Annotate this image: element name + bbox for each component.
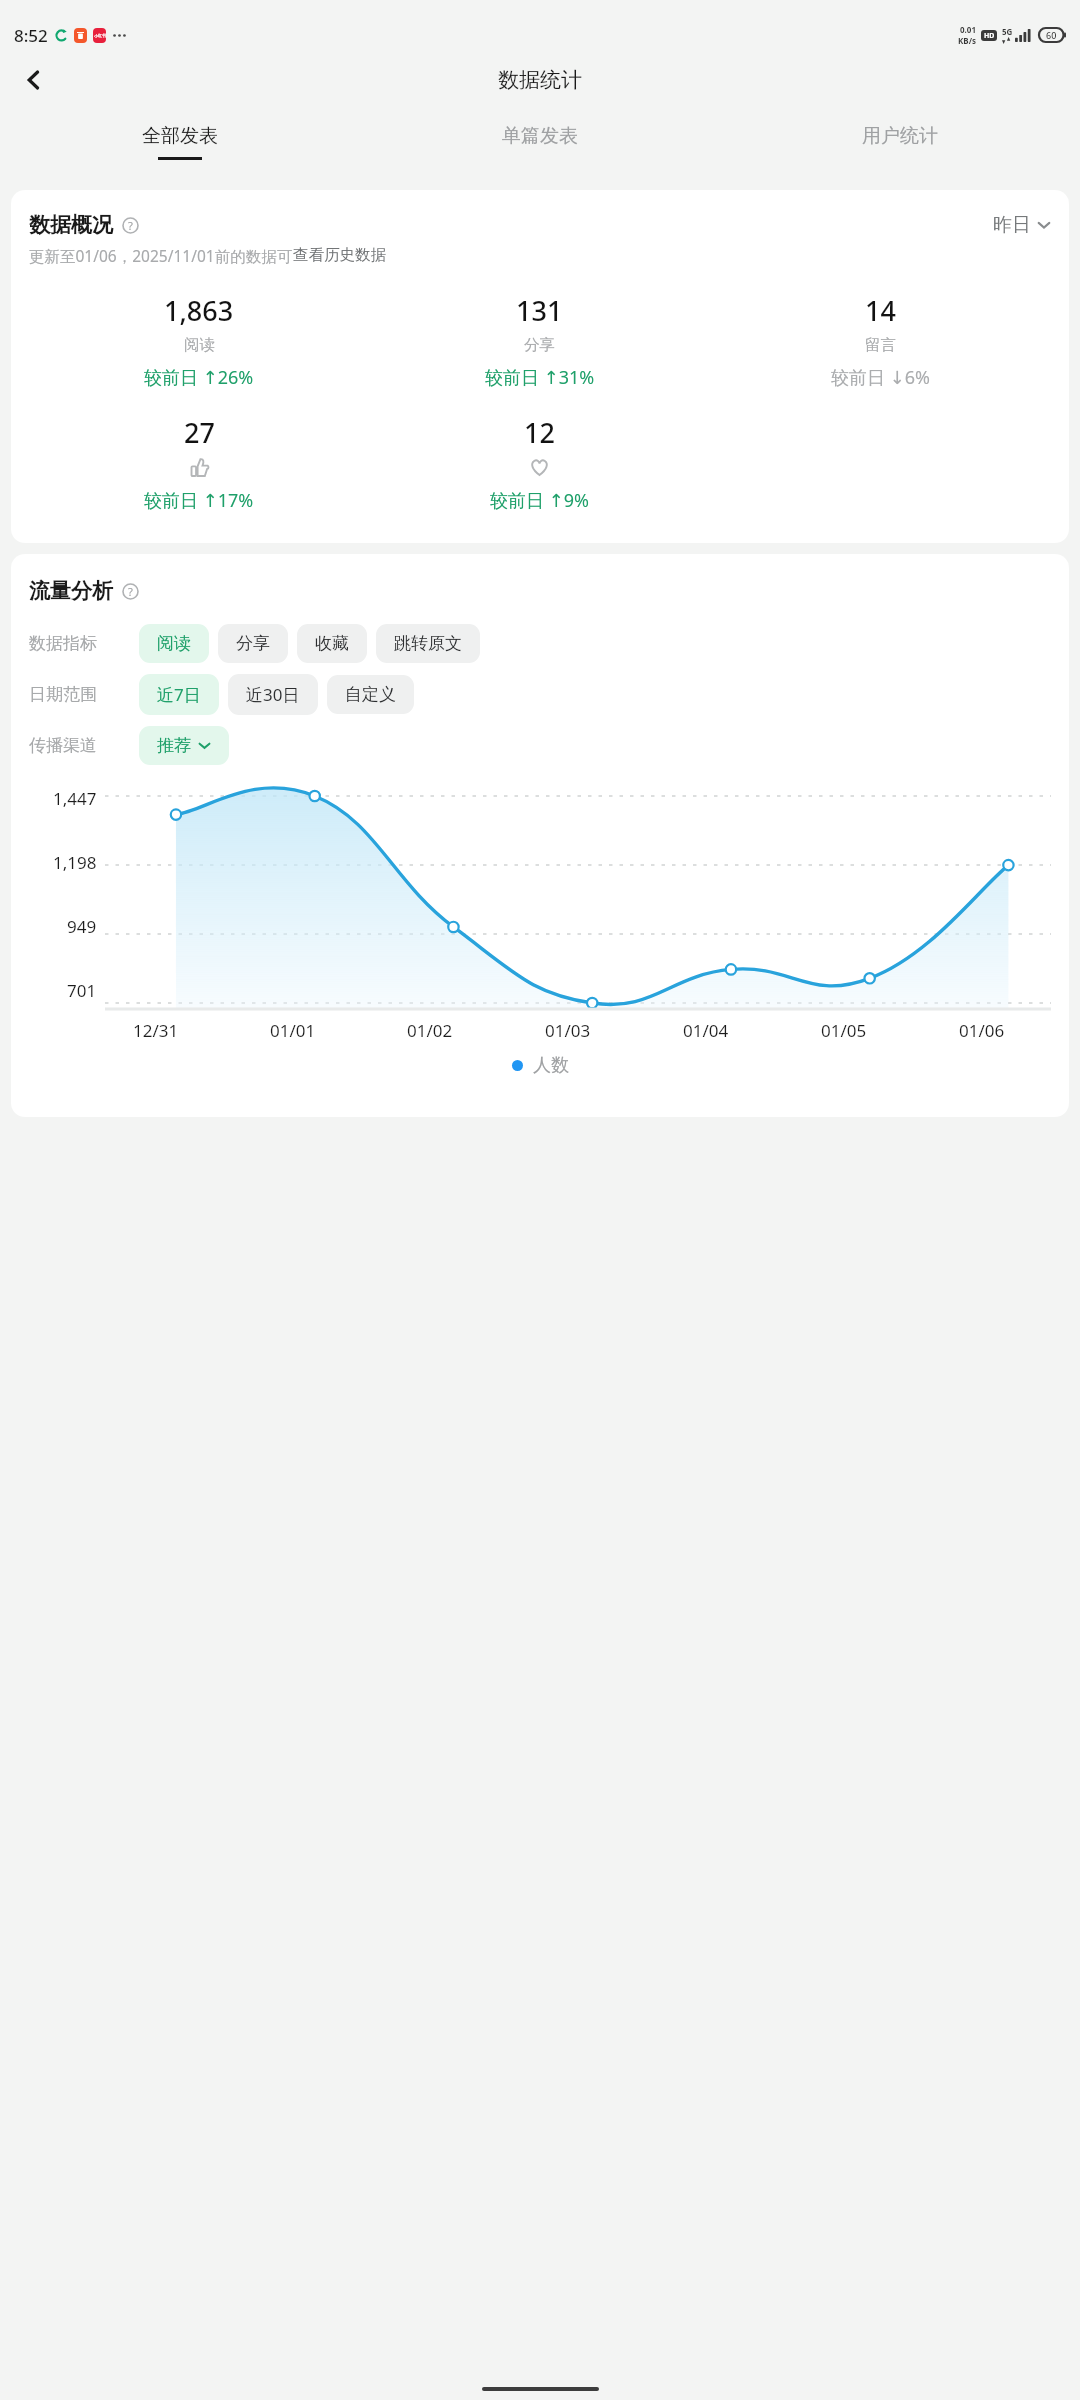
button[interactable]: 分享 — [218, 624, 288, 663]
staticText: 01/01 — [270, 1019, 316, 1042]
staticText: 8:52 — [14, 24, 48, 47]
staticText: 跳转原文 — [394, 633, 462, 654]
staticText: 0.01 — [960, 24, 976, 35]
button[interactable]: 用户统计 — [720, 111, 1080, 173]
staticText: 01/06 — [959, 1019, 1005, 1042]
staticText: 自定义 — [345, 684, 396, 705]
staticText: 日期范围 — [29, 684, 139, 705]
staticText: 01/03 — [545, 1019, 591, 1042]
staticText: 分享 — [524, 335, 555, 355]
staticText: 流量分析 — [29, 578, 113, 604]
staticText: 全部发表 — [142, 124, 218, 148]
staticText: 单篇发表 — [502, 124, 578, 148]
staticText: ? — [128, 584, 133, 599]
staticText: 较前日 ↑26% — [144, 365, 254, 390]
staticText: 较前日 ↑9% — [490, 488, 590, 513]
button[interactable]: 全部发表 — [0, 111, 360, 173]
staticText: 收藏 — [315, 633, 349, 654]
staticText: 131 — [516, 292, 563, 329]
staticText: 分享 — [236, 633, 270, 654]
button[interactable]: 查看历史数据 — [293, 245, 386, 265]
staticText: 较前日 ↑31% — [485, 365, 595, 390]
staticText: 1,447 — [53, 787, 97, 810]
button[interactable]: 跳转原文 — [376, 624, 480, 663]
staticText: 数据统计 — [498, 67, 582, 93]
button[interactable]: 阅读 — [139, 624, 209, 663]
staticText: ? — [128, 218, 133, 233]
staticText: 14 — [865, 292, 896, 329]
staticText: 12 — [524, 414, 555, 451]
staticText: 阅读 — [157, 633, 191, 654]
staticText: 数据概况 — [29, 212, 113, 238]
button[interactable]: 近30日 — [228, 674, 318, 715]
button[interactable]: 14 — [710, 292, 1051, 390]
button[interactable]: 单篇发表 — [360, 111, 720, 173]
staticText: 1,863 — [164, 292, 234, 329]
staticText: 更新至01/06，2025/11/01前的数据可 — [29, 245, 293, 266]
staticText: 数据指标 — [29, 633, 139, 654]
button[interactable]: 近7日 — [139, 674, 219, 715]
staticText: 1,198 — [53, 851, 97, 874]
staticText: 推荐 — [157, 735, 191, 756]
button[interactable]: 推荐 — [139, 726, 229, 765]
staticText: HD — [984, 31, 995, 41]
button[interactable]: 12 — [369, 414, 710, 513]
staticText: 传播渠道 — [29, 735, 139, 756]
button[interactable]: 131 — [369, 292, 710, 390]
staticText: 27 — [184, 414, 215, 451]
staticText: 01/04 — [683, 1019, 729, 1042]
button[interactable]: Help — [120, 581, 141, 602]
staticText: 12/31 — [133, 1019, 179, 1042]
button[interactable]: Help — [120, 215, 141, 236]
button[interactable]: 收藏 — [297, 624, 367, 663]
button[interactable]: Back — [10, 56, 58, 104]
staticText: 较前日 ↓6% — [831, 365, 931, 390]
staticText: 01/02 — [407, 1019, 453, 1042]
staticText: 较前日 ↑17% — [144, 488, 254, 513]
staticText: 01/05 — [821, 1019, 867, 1042]
staticText: 近7日 — [157, 683, 201, 706]
staticText: 5G — [1002, 26, 1013, 37]
staticText: 701 — [67, 979, 97, 1002]
button[interactable]: 1,863 — [29, 292, 369, 390]
staticText: 60 — [1046, 29, 1057, 41]
button[interactable]: 自定义 — [327, 675, 414, 714]
staticText: KB/s — [958, 35, 976, 46]
staticText: 留言 — [865, 335, 896, 355]
staticText: 阅读 — [184, 335, 215, 355]
button[interactable]: 昨日 — [993, 213, 1051, 237]
staticText: 昨日 — [993, 213, 1031, 237]
staticText: 近30日 — [246, 683, 300, 706]
staticText: 人数 — [533, 1054, 569, 1077]
staticText: 用户统计 — [862, 124, 938, 148]
staticText: 小红书 — [94, 33, 106, 38]
staticText: 949 — [67, 915, 97, 938]
button[interactable]: 27 — [29, 414, 369, 513]
